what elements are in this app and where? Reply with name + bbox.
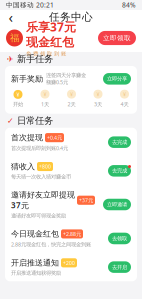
staticText: 邀请好友即可得现金奖励 bbox=[11, 212, 66, 219]
staticText: 去完成 bbox=[112, 139, 127, 145]
staticText: ✈ bbox=[7, 54, 14, 64]
staticText: ¥ bbox=[43, 91, 46, 98]
staticText: 2天 bbox=[67, 101, 75, 108]
staticText: 开启推送通知获得奖励 bbox=[11, 270, 61, 276]
button[interactable]: 去完成 bbox=[108, 165, 131, 177]
staticText: 新手任务 bbox=[17, 53, 53, 65]
staticText: 日常任务 bbox=[17, 115, 53, 126]
button[interactable]: 立即分享 bbox=[103, 73, 131, 85]
button[interactable]: 立即领取 bbox=[98, 31, 136, 45]
staticText: ¥ bbox=[70, 91, 73, 98]
staticText: 2.88元现金红包，快完之间现金到账 bbox=[11, 241, 91, 248]
staticText: +2.88元 bbox=[63, 230, 81, 237]
staticText: +0.4元 bbox=[47, 134, 62, 141]
staticText: ¥ bbox=[96, 91, 99, 98]
staticText: ¥ bbox=[123, 91, 126, 98]
staticText: 邀请好友立即提现37元 bbox=[11, 190, 75, 210]
staticText: 1天 bbox=[41, 101, 49, 108]
staticText: ‹ bbox=[8, 7, 13, 27]
staticText: 去完成 bbox=[112, 167, 127, 174]
staticText: 任务中心 bbox=[49, 10, 93, 23]
staticText: ✓ bbox=[7, 116, 14, 125]
staticText: 今日现金红包 bbox=[11, 229, 59, 239]
staticText: 开始 bbox=[13, 101, 23, 107]
staticText: 中国移动 bbox=[6, 1, 34, 9]
staticText: 去领取 bbox=[112, 235, 127, 242]
button[interactable]: 去开启 bbox=[108, 261, 131, 273]
staticText: 20:21 bbox=[36, 1, 54, 9]
staticText: 立即领取 bbox=[103, 34, 131, 42]
staticText: 3天 bbox=[94, 101, 102, 108]
staticText: 84% bbox=[122, 1, 136, 9]
button[interactable]: 去完成 bbox=[108, 136, 131, 148]
staticText: 乐享37元现金红包 bbox=[26, 19, 76, 50]
staticText: +37元 bbox=[79, 197, 93, 204]
staticText: 福 bbox=[10, 32, 19, 44]
staticText: 新手奖励 bbox=[11, 74, 43, 84]
staticText: 连签四天分享赚金额赚0.5元 bbox=[46, 72, 86, 86]
staticText: 猜收入 bbox=[11, 162, 35, 171]
staticText: 每天猜一次收入猜对赚金币 bbox=[11, 173, 71, 180]
button[interactable]: 去领取 bbox=[108, 233, 131, 244]
staticText: ¥ bbox=[16, 91, 19, 98]
staticText: +800 bbox=[39, 163, 51, 170]
staticText: +200 bbox=[63, 259, 75, 266]
staticText: 立即分享 bbox=[107, 75, 127, 82]
staticText: 首次提现后即刻到账0.4元 bbox=[11, 144, 68, 152]
staticText: 免 费 领 取 到 账 bbox=[26, 51, 66, 57]
button[interactable]: 立即邀请 bbox=[103, 199, 131, 210]
staticText: 4天 bbox=[120, 101, 128, 108]
staticText: 去开启 bbox=[112, 264, 127, 270]
staticText: 立即邀请 bbox=[107, 201, 127, 208]
button[interactable]: Back bbox=[4, 10, 18, 24]
staticText: 开启推送通知 bbox=[11, 258, 59, 268]
staticText: 首次提现 bbox=[11, 133, 43, 142]
